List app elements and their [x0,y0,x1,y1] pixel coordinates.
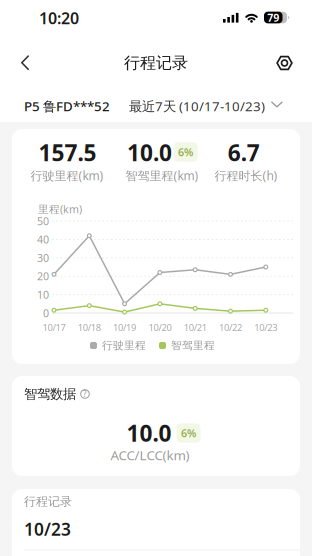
staticText: 智驾里程 [171,339,215,352]
staticText: 6% [178,145,193,159]
staticText: 40 [37,232,49,246]
staticText: 30 [37,251,49,265]
staticText: 10/19 [113,321,136,334]
staticText: ACC/LCC(km) [110,446,189,464]
staticText: 10/22 [219,321,242,334]
button[interactable]: About smart-driving data [80,389,90,399]
button[interactable]: Back [0,47,39,78]
staticText: 行驶里程(km) [30,167,103,183]
staticText: 智驾数据 [24,386,76,402]
staticText: 行程记录 [24,494,72,509]
staticText: 10/23 [24,517,71,540]
staticText: 最近7天 (10/17-10/23) [129,97,265,115]
staticText: 10:20 [39,7,79,29]
staticText: 10/18 [78,321,101,334]
staticText: P5 鲁FD***52 [24,97,110,115]
staticText: 10.0 [126,418,171,448]
button[interactable]: 最近7天 (10/17-10/23) [129,97,312,115]
staticText: 50 [37,214,49,228]
staticText: 10.0 [127,137,172,167]
staticText: 10 [37,287,49,302]
staticText: 行驶里程 [102,339,146,352]
staticText: 10/20 [148,321,171,334]
staticText: 行程时长(h) [214,167,277,183]
staticText: 6% [181,426,196,440]
staticText: 79 [267,10,279,25]
staticText: 10/17 [42,321,65,334]
staticText: 0 [43,306,49,320]
button[interactable]: Settings [266,46,312,79]
staticText: 6.7 [228,137,260,167]
staticText: ? [83,389,87,399]
staticText: 10/21 [184,321,207,334]
staticText: 20 [37,269,49,283]
staticText: 157.5 [38,137,96,167]
staticText: 里程(km) [38,202,82,216]
staticText: 行程记录 [124,53,188,73]
staticText: 10/23 [254,321,277,334]
staticText: 智驾里程(km) [125,167,198,183]
